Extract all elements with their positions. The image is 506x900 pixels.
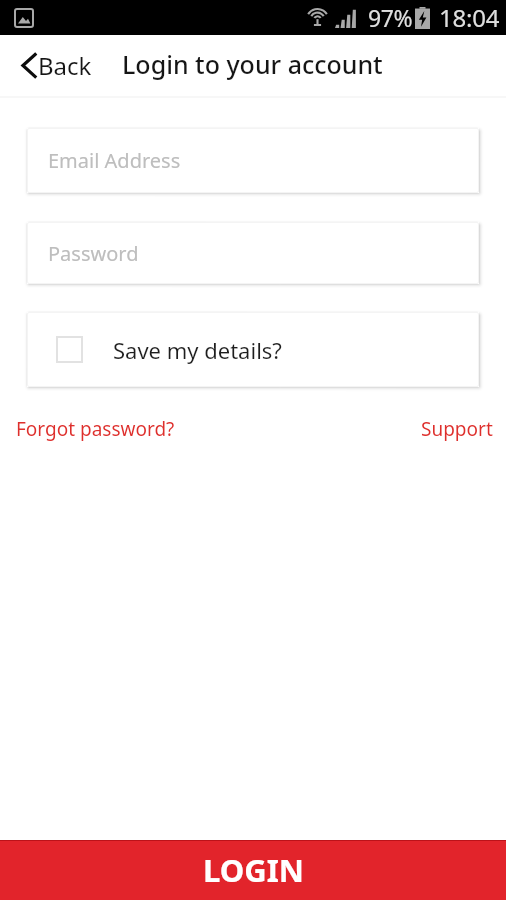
staticText: Email Address — [48, 147, 181, 174]
other: Battery charging — [415, 7, 430, 29]
button[interactable]: Back — [0, 34, 102, 97]
staticText: Login to your account — [122, 47, 383, 81]
button[interactable]: Email Address — [27, 128, 479, 193]
staticText: 97% — [368, 2, 413, 33]
other: Mobile signal — [335, 9, 356, 28]
button[interactable]: Save my details? — [27, 312, 479, 387]
button[interactable]: Support — [417, 412, 497, 446]
staticText: Password — [48, 240, 139, 267]
staticText: Support — [421, 416, 493, 442]
staticText: 18:04 — [439, 1, 500, 34]
other: Screenshot captured — [14, 8, 34, 28]
button[interactable]: LOGIN — [0, 840, 506, 900]
button[interactable]: Forgot password? — [12, 412, 179, 446]
staticText: Save my details? — [113, 335, 282, 365]
staticText: Forgot password? — [16, 416, 175, 442]
staticText: Back — [38, 49, 92, 82]
other: Wi-Fi signal — [307, 8, 328, 28]
button[interactable]: Password — [27, 222, 479, 284]
staticText: LOGIN — [203, 849, 304, 891]
other: Back — [21, 53, 37, 78]
